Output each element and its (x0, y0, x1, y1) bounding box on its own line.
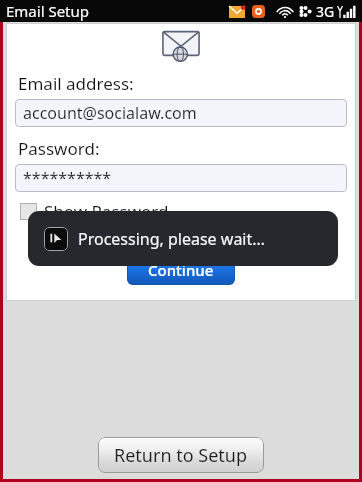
button[interactable]: account@socialaw.com (15, 99, 347, 127)
button[interactable]: Show Password (20, 200, 169, 223)
staticText: Continue (148, 260, 214, 280)
staticText: Show Password (44, 200, 169, 223)
staticText: 3G (316, 2, 335, 21)
button[interactable]: Continue (127, 255, 235, 285)
other: Loading (44, 227, 68, 251)
staticText: ********** (23, 167, 112, 189)
button[interactable]: Return to Setup (98, 437, 264, 473)
staticText: Email Setup (6, 1, 90, 21)
staticText: Processing, please wait… (78, 228, 265, 250)
staticText: Return to Setup (114, 443, 248, 468)
button[interactable]: ********** (15, 164, 347, 192)
button[interactable]: Loading (28, 211, 338, 266)
staticText: Email address: (18, 72, 134, 95)
staticText: account@socialaw.com (23, 102, 197, 124)
staticText: Password: (18, 137, 100, 160)
